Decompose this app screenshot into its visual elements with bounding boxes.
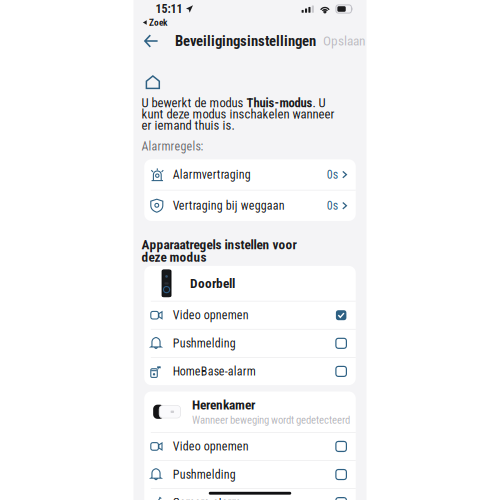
button[interactable]: Opslaan: [316, 29, 365, 53]
staticText: 15:11: [155, 2, 182, 16]
button[interactable]: Back: [139, 32, 163, 50]
staticText: Pushmelding: [173, 467, 236, 482]
button[interactable]: Video opnemen: [144, 433, 356, 460]
button[interactable]: Pushmelding: [144, 330, 356, 357]
staticText: Vertraging bij weggaan: [173, 199, 285, 213]
staticText: Zoek: [149, 17, 167, 28]
staticText: Video opnemen: [173, 308, 249, 322]
button[interactable]: Alarmvertraging: [144, 159, 356, 190]
staticText: Herenkamer: [192, 397, 255, 413]
staticText: Camera-alarm: [173, 496, 241, 500]
button[interactable]: Video opnemen: [144, 301, 356, 329]
staticText: Alarmvertraging: [173, 168, 251, 182]
staticText: Apparaatregels instellen voor deze modus: [141, 238, 296, 263]
staticText: Opslaan: [323, 33, 365, 49]
button[interactable]: HomeBase-alarm: [144, 358, 356, 385]
button[interactable]: Vertraging bij weggaan: [144, 190, 356, 221]
staticText: 0s: [327, 199, 338, 213]
staticText: Pushmelding: [173, 336, 236, 350]
staticText: Wanneer beweging wordt gedetecteerd: [192, 414, 350, 426]
staticText: Video opnemen: [173, 439, 249, 453]
staticText: U bewerkt de modus Thuis-modus. U kunt d…: [141, 97, 334, 131]
staticText: HomeBase-alarm: [173, 364, 256, 378]
staticText: Doorbell: [190, 275, 235, 291]
staticText: Alarmregels:: [141, 139, 203, 153]
staticText: 0s: [327, 168, 338, 182]
button[interactable]: Camera-alarm: [144, 489, 356, 500]
button[interactable]: Pushmelding: [144, 461, 356, 488]
staticText: Beveiligingsinstellingen: [175, 32, 316, 50]
